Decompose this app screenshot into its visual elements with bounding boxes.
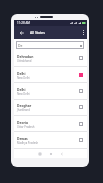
- staticText: New Delhi: [17, 92, 30, 96]
- button[interactable]: Delhi: [14, 83, 87, 99]
- button[interactable]: Dewas: [14, 132, 87, 148]
- staticText: Delhi: [17, 87, 26, 91]
- staticText: Madhya Pradesh: [17, 141, 39, 145]
- staticText: New Delhi: [17, 76, 30, 80]
- button[interactable]: Clear search: [78, 43, 83, 48]
- staticText: Uttrakhand: [17, 59, 32, 63]
- button[interactable]: Back: [58, 150, 65, 157]
- button[interactable]: Recent apps: [36, 150, 43, 157]
- button[interactable]: Delhi: [14, 67, 87, 83]
- button[interactable]: More options: [79, 26, 87, 39]
- button[interactable]: Navigate up: [17, 26, 26, 39]
- button[interactable]: Deoghar: [14, 99, 87, 115]
- button[interactable]: Dehradun: [14, 50, 87, 66]
- button[interactable]: Home: [47, 150, 54, 157]
- staticText: Dehradun: [17, 54, 34, 58]
- staticText: Uttar Pradesh: [17, 125, 35, 129]
- staticText: 11:28 AM: [17, 21, 31, 25]
- staticText: All States: [30, 30, 45, 35]
- staticText: Delhi: [17, 71, 26, 75]
- staticText: Deoria: [17, 120, 28, 124]
- staticText: Deoghar: [17, 103, 32, 107]
- button[interactable]: De: [16, 41, 84, 49]
- staticText: Dewas: [17, 136, 28, 140]
- staticText: De: [18, 43, 23, 48]
- button[interactable]: Deoria: [14, 116, 87, 132]
- staticText: Jharkhand: [17, 108, 30, 112]
